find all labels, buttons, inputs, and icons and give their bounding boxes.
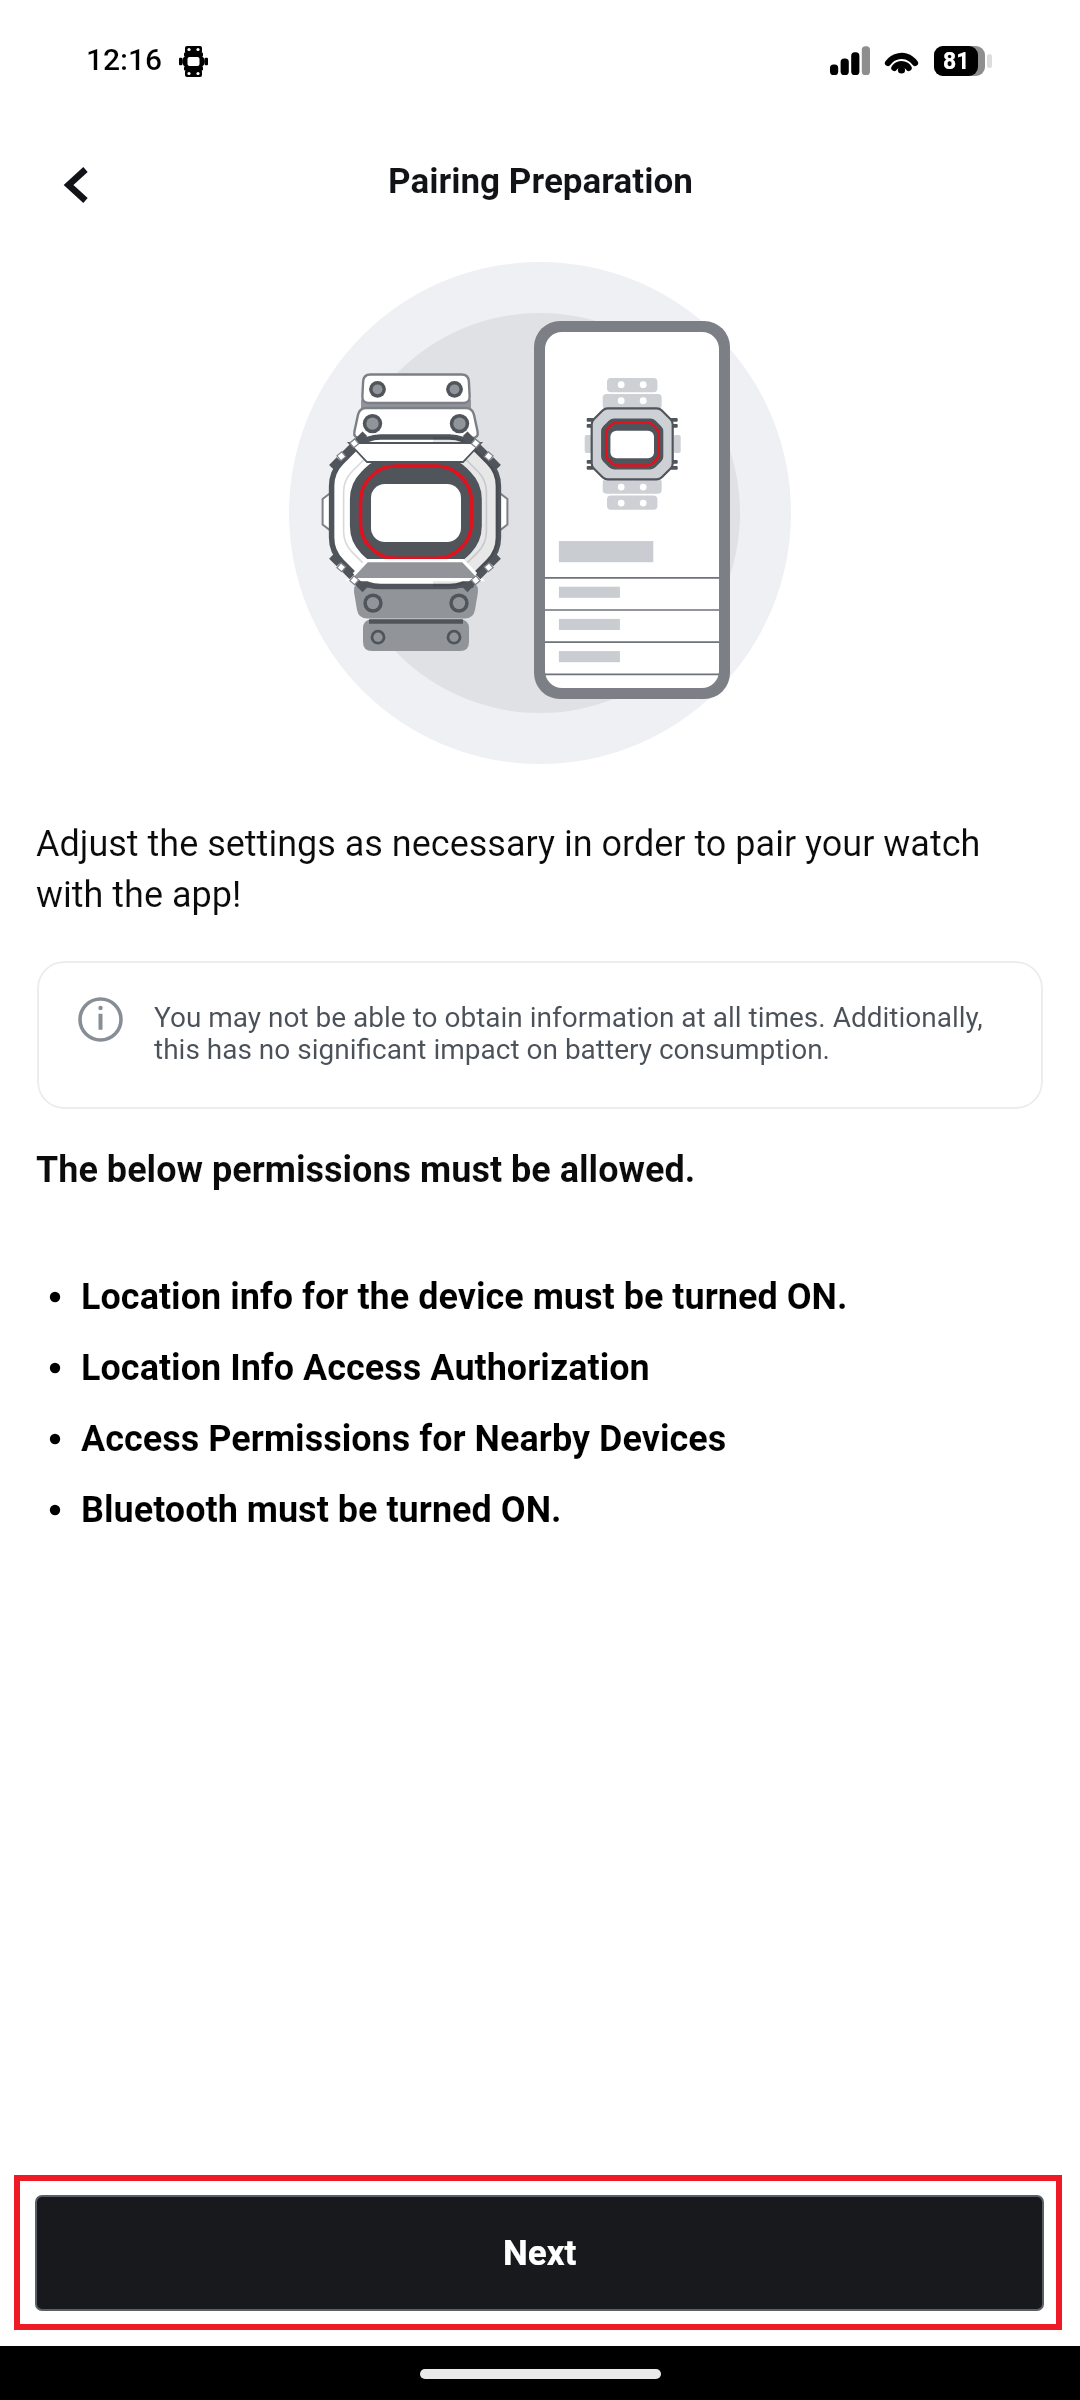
staticText: Access Permissions for Nearby Devices	[81, 1418, 727, 1460]
button[interactable]: Back	[38, 147, 114, 223]
staticText: Bluetooth must be turned ON.	[81, 1489, 562, 1531]
staticText: 12:16	[86, 42, 163, 77]
staticText: Pairing Preparation	[388, 161, 693, 202]
staticText: Location info for the device must be tur…	[81, 1276, 848, 1318]
staticText: Next	[503, 2233, 577, 2274]
button[interactable]: Next	[37, 2197, 1042, 2309]
staticText: The below permissions must be allowed.	[36, 1149, 696, 1191]
staticText: You may not be able to obtain informatio…	[154, 1001, 1034, 1066]
staticText: 81	[943, 48, 970, 75]
staticText: Adjust the settings as necessary in orde…	[36, 823, 1046, 917]
staticText: Location Info Access Authorization	[81, 1347, 650, 1389]
